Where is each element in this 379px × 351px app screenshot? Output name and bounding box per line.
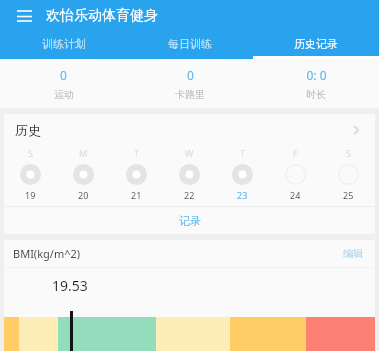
staticText: 21: [131, 189, 142, 201]
staticText: 欢怡乐动体育健身: [46, 7, 158, 25]
staticText: S: [28, 147, 33, 159]
button[interactable]: 编辑: [340, 244, 366, 263]
staticText: M: [79, 147, 88, 159]
staticText: 19: [25, 189, 36, 201]
button[interactable]: 训练计划: [0, 32, 127, 56]
button[interactable]: Menu: [10, 2, 38, 30]
staticText: 0: 0: [306, 67, 327, 83]
button[interactable]: 0: [127, 59, 253, 108]
staticText: 22: [184, 189, 195, 201]
staticText: 运动: [54, 88, 74, 101]
staticText: 23: [237, 189, 248, 201]
staticText: 0: [187, 67, 194, 83]
button[interactable]: 历史: [4, 114, 375, 146]
staticText: T: [134, 147, 140, 159]
staticText: 19.53: [52, 276, 88, 295]
staticText: 20: [78, 189, 89, 201]
staticText: 时长: [306, 88, 326, 101]
button[interactable]: 21: [110, 160, 163, 204]
button[interactable]: 22: [163, 160, 216, 204]
staticText: 25: [343, 189, 354, 201]
staticText: 每日训练: [168, 37, 212, 51]
staticText: 训练计划: [42, 37, 86, 51]
staticText: 24: [290, 189, 301, 201]
staticText: W: [185, 147, 194, 159]
button[interactable]: 23: [216, 160, 269, 204]
staticText: S: [346, 147, 351, 159]
staticText: T: [240, 147, 246, 159]
button[interactable]: 每日训练: [127, 32, 253, 56]
button[interactable]: 0: 0: [253, 59, 379, 108]
staticText: 历史记录: [294, 37, 338, 51]
staticText: 编辑: [343, 247, 363, 260]
button[interactable]: 24: [269, 160, 322, 204]
button[interactable]: 记录: [4, 207, 375, 234]
staticText: F: [293, 147, 298, 159]
button[interactable]: 0: [0, 59, 127, 108]
button[interactable]: 20: [57, 160, 110, 204]
button[interactable]: 19: [4, 160, 57, 204]
staticText: 历史: [15, 122, 41, 138]
staticText: BMI(kg/m^2): [13, 246, 81, 261]
button[interactable]: 25: [322, 160, 375, 204]
staticText: 0: [60, 67, 67, 83]
staticText: 记录: [179, 214, 201, 228]
staticText: 卡路里: [175, 88, 205, 101]
button[interactable]: 历史记录: [253, 32, 379, 56]
